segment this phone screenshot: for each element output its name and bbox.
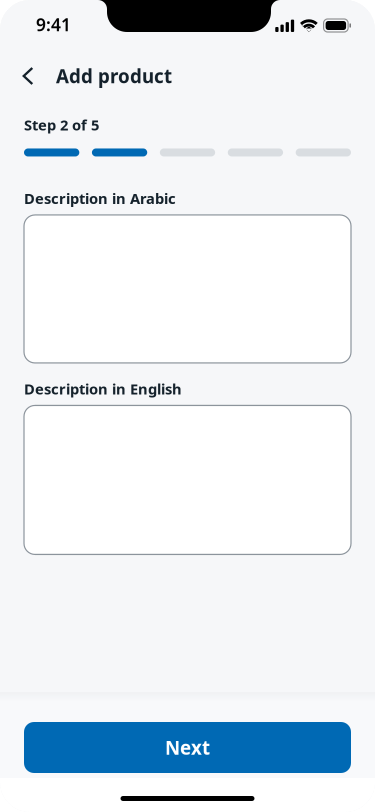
button[interactable]: Description in English: [24, 405, 351, 554]
staticText: Description in Arabic: [24, 188, 176, 208]
staticText: Step 2 of 5: [24, 115, 99, 134]
staticText: Description in English: [24, 379, 182, 398]
staticText: Next: [165, 735, 210, 760]
button[interactable]: Description in Arabic: [24, 215, 351, 363]
staticText: 9:41: [36, 13, 71, 36]
button[interactable]: Next: [24, 722, 351, 773]
button[interactable]: Back: [12, 56, 44, 96]
staticText: Add product: [56, 64, 172, 88]
